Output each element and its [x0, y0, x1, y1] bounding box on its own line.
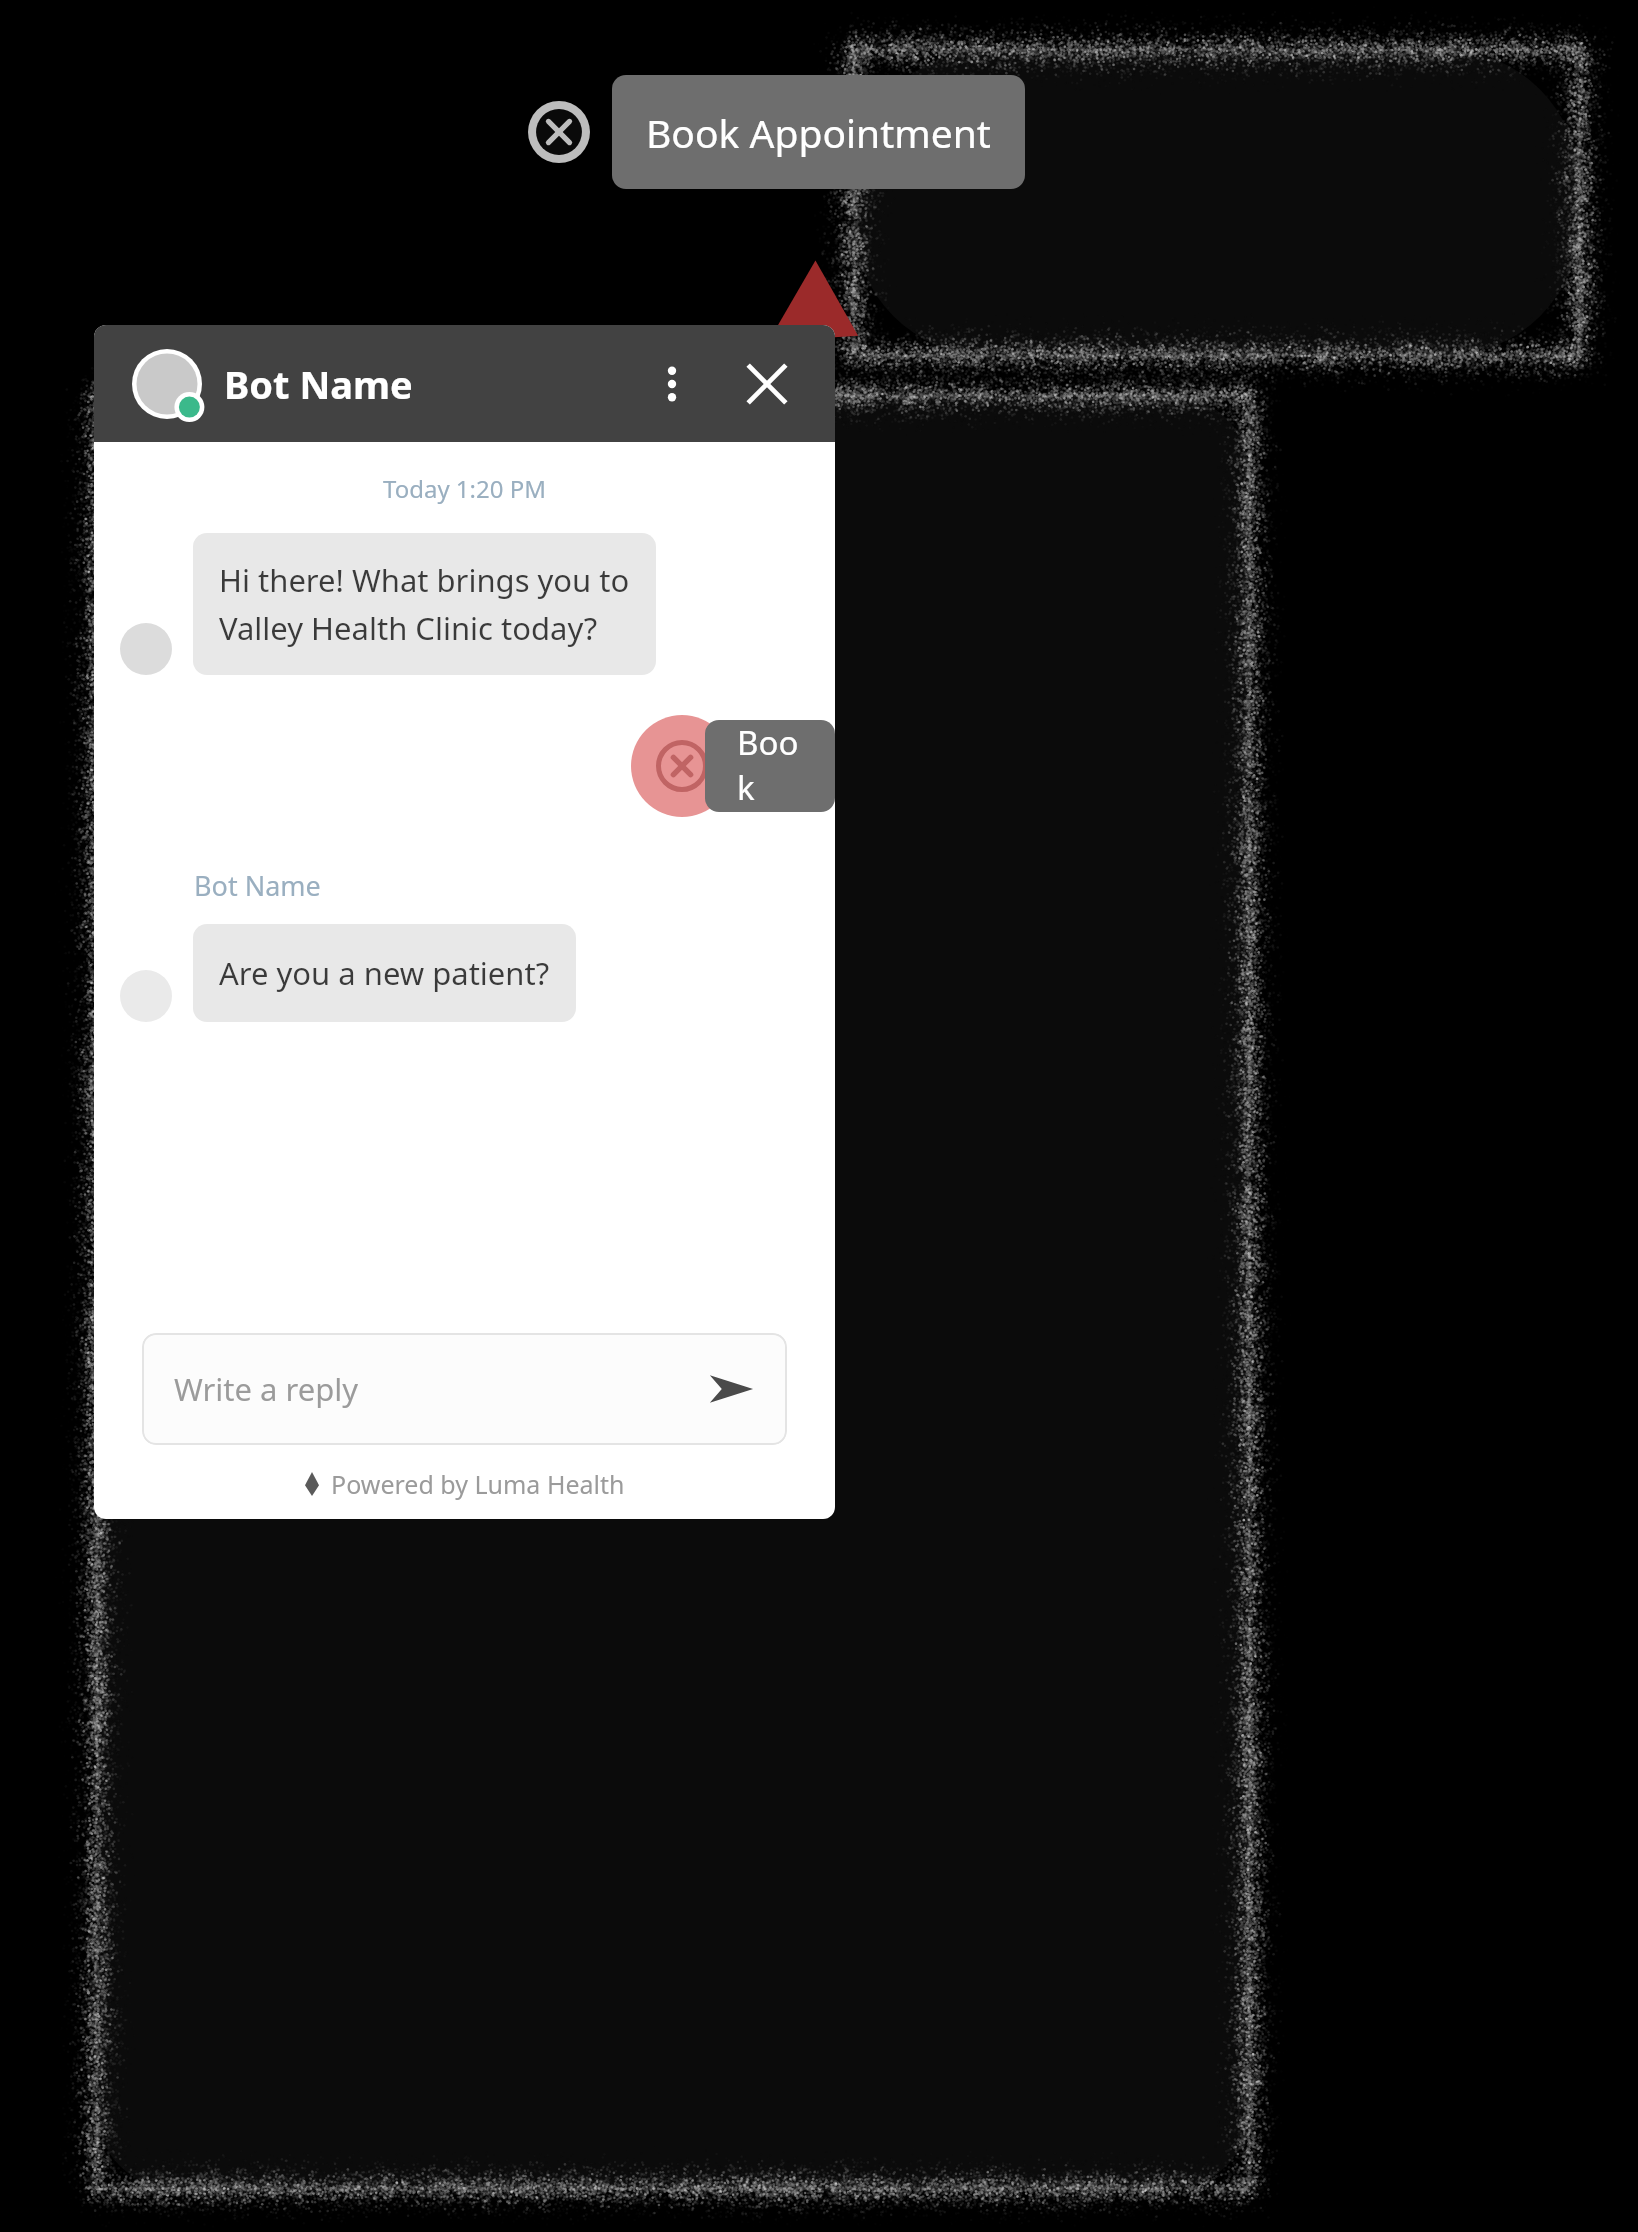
button[interactable]: Book Appointment	[612, 75, 1025, 189]
staticText: Are you a new patient?	[219, 952, 550, 994]
staticText: Book Appointment	[737, 720, 803, 812]
button[interactable]: Send	[701, 1359, 761, 1419]
button[interactable]: Remove action	[528, 101, 590, 163]
staticText: Bot Name	[194, 867, 321, 904]
staticText: Book Appointment	[646, 106, 991, 159]
button[interactable]: More options	[643, 355, 701, 413]
button[interactable]: Write a reply	[142, 1333, 787, 1445]
button[interactable]: Remove action	[631, 715, 733, 817]
button[interactable]: Book Appointment	[705, 720, 835, 812]
staticText: Write a reply	[174, 1368, 359, 1410]
staticText: Powered by Luma Health	[331, 1467, 625, 1501]
staticText: Today 1:20 PM	[94, 472, 835, 505]
button[interactable]: Close	[735, 352, 799, 416]
staticText: Hi there! What brings you to Valley Heal…	[219, 559, 630, 649]
staticText: Bot Name	[224, 358, 413, 410]
